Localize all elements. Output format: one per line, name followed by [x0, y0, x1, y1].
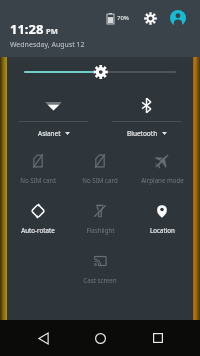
- button[interactable]: No SIM card: [69, 144, 131, 194]
- button[interactable]: Settings: [140, 8, 160, 28]
- staticText: 11:28: [10, 20, 44, 38]
- button[interactable]: Back: [28, 323, 58, 353]
- button[interactable]: Cast screen: [69, 244, 131, 294]
- button[interactable]: Location: [131, 194, 193, 244]
- staticText: Bluetooth: [127, 129, 158, 138]
- staticText: Wednesday, August 12: [10, 40, 85, 50]
- button[interactable]: Airplane mode: [131, 144, 193, 194]
- button[interactable]: No SIM card: [7, 144, 69, 194]
- button[interactable]: Recent apps: [143, 323, 173, 353]
- staticText: Auto-rotate: [21, 226, 55, 234]
- staticText: Location: [150, 226, 175, 234]
- staticText: PM: [46, 26, 58, 36]
- button[interactable]: Home: [85, 323, 115, 353]
- button[interactable]: Auto-rotate: [7, 194, 69, 244]
- button[interactable]: Wi-Fi Asianet: [7, 87, 100, 144]
- button[interactable]: User profile: [168, 8, 188, 28]
- staticText: No SIM card: [82, 176, 118, 184]
- staticText: 70%: [117, 14, 129, 22]
- staticText: No SIM card: [20, 176, 56, 184]
- staticText: Cast screen: [83, 276, 117, 284]
- button[interactable]: Brightness: [7, 57, 193, 87]
- button[interactable]: Flashlight: [69, 194, 131, 244]
- staticText: Flashlight: [86, 226, 115, 234]
- staticText: Asianet: [38, 129, 61, 138]
- button[interactable]: Bluetooth: [100, 87, 193, 144]
- staticText: Airplane mode: [141, 176, 184, 184]
